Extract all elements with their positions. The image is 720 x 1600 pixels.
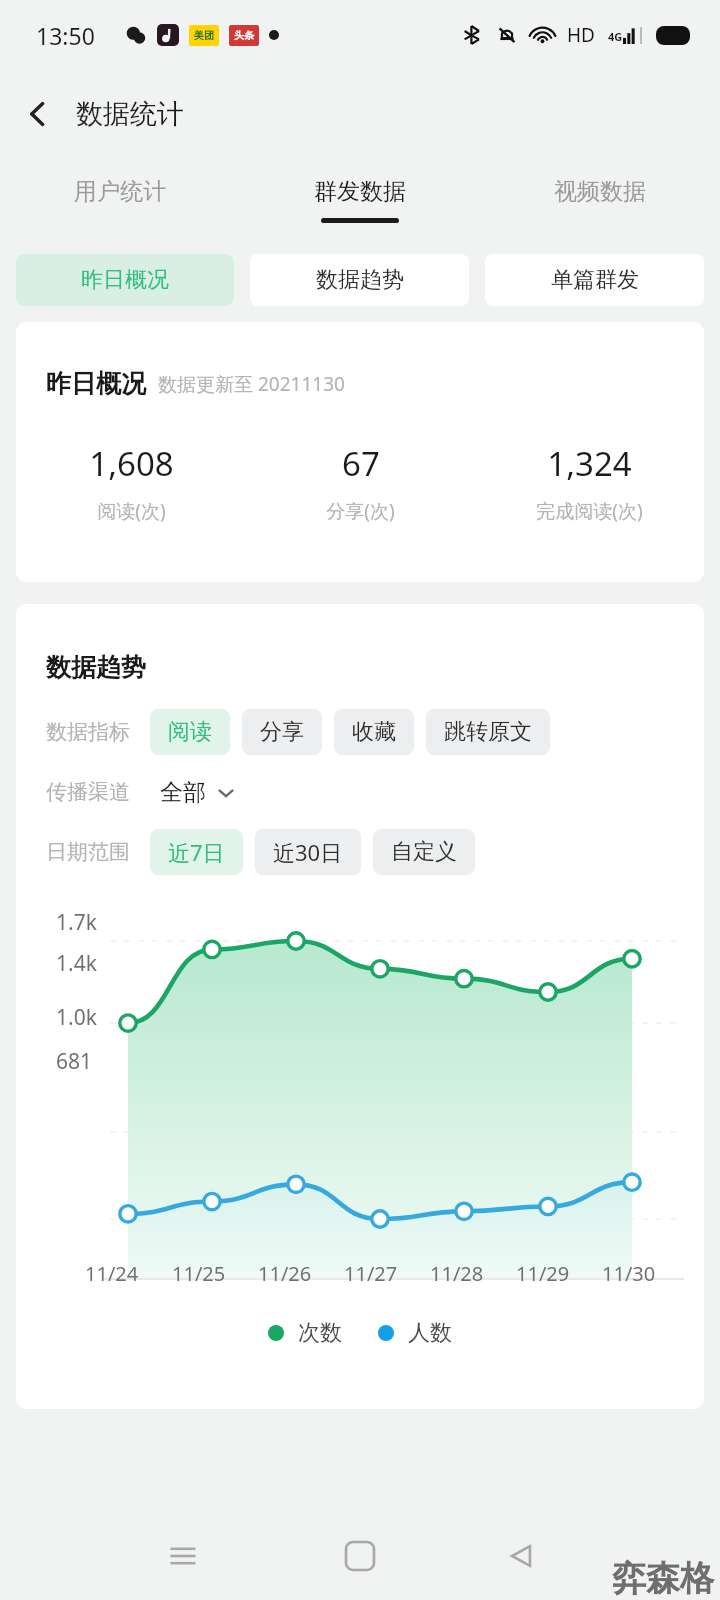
staticText: 弈森格 (612, 1557, 714, 1600)
staticText: 11/25 (172, 1260, 226, 1287)
button[interactable]: 全部 (160, 778, 236, 807)
button[interactable]: 近7日 (150, 829, 243, 875)
staticText: 全部 (160, 778, 206, 807)
button[interactable]: 用户统计 (0, 158, 240, 242)
staticText: 11/27 (344, 1260, 398, 1287)
staticText: 681 (56, 1047, 93, 1076)
button[interactable]: 视频数据 (480, 158, 720, 242)
staticText: 传播渠道 (46, 779, 130, 805)
staticText: 11/29 (516, 1260, 570, 1287)
staticText: 人数 (408, 1319, 452, 1347)
button[interactable]: 数据趋势 (250, 254, 469, 306)
staticText: 数据更新至 20211130 (158, 371, 345, 397)
staticText: HD (567, 22, 595, 48)
staticText: 近7日 (168, 837, 225, 867)
button[interactable]: Back (10, 86, 66, 142)
button[interactable]: 自定义 (373, 829, 475, 875)
staticText: 分享 (260, 718, 304, 746)
staticText: 4G (608, 29, 623, 44)
staticText: 11/28 (430, 1260, 484, 1287)
staticText: 11/24 (85, 1260, 139, 1287)
staticText: 1.4k (56, 949, 97, 978)
button[interactable]: Recent apps (148, 1521, 218, 1591)
staticText: 单篇群发 (551, 266, 639, 294)
staticText: 昨日概况 (46, 368, 146, 399)
staticText: 美团 (194, 29, 214, 42)
staticText: 次数 (298, 1319, 342, 1347)
staticText: 1.7k (56, 908, 97, 937)
staticText: 分享(次) (326, 498, 395, 524)
staticText: 13:50 (36, 20, 95, 51)
staticText: 数据统计 (76, 97, 184, 131)
button[interactable]: 近30日 (255, 829, 361, 875)
button[interactable]: 跳转原文 (426, 709, 550, 755)
button[interactable]: Back (486, 1521, 556, 1591)
staticText: 日期范围 (46, 839, 130, 865)
staticText: 数据趋势 (316, 266, 404, 294)
staticText: 1,608 (89, 441, 174, 486)
staticText: 1,324 (547, 441, 632, 486)
staticText: 头条 (234, 29, 254, 42)
staticText: 视频数据 (554, 177, 646, 206)
staticText: 数据指标 (46, 719, 130, 745)
staticText: 收藏 (352, 718, 396, 746)
staticText: 群发数据 (314, 177, 406, 206)
staticText: 阅读 (168, 718, 212, 746)
staticText: 用户统计 (74, 177, 166, 206)
button[interactable]: 阅读 (150, 709, 230, 755)
staticText: 11/26 (258, 1260, 312, 1287)
staticText: 自定义 (391, 838, 457, 866)
staticText: 近30日 (273, 837, 343, 867)
button[interactable]: 分享 (242, 709, 322, 755)
staticText: 完成阅读(次) (536, 498, 643, 524)
staticText: 数据趋势 (46, 652, 146, 683)
staticText: 昨日概况 (81, 266, 169, 294)
staticText: 1.0k (56, 1003, 97, 1032)
staticText: 11/30 (602, 1260, 656, 1287)
button[interactable]: 群发数据 (240, 158, 480, 242)
button[interactable]: 单篇群发 (485, 254, 704, 306)
staticText: 阅读(次) (97, 498, 166, 524)
staticText: 67 (342, 441, 380, 486)
button[interactable]: 收藏 (334, 709, 414, 755)
staticText: 跳转原文 (444, 718, 532, 746)
button[interactable]: 昨日概况 (16, 254, 234, 306)
button[interactable]: Home (325, 1521, 395, 1591)
